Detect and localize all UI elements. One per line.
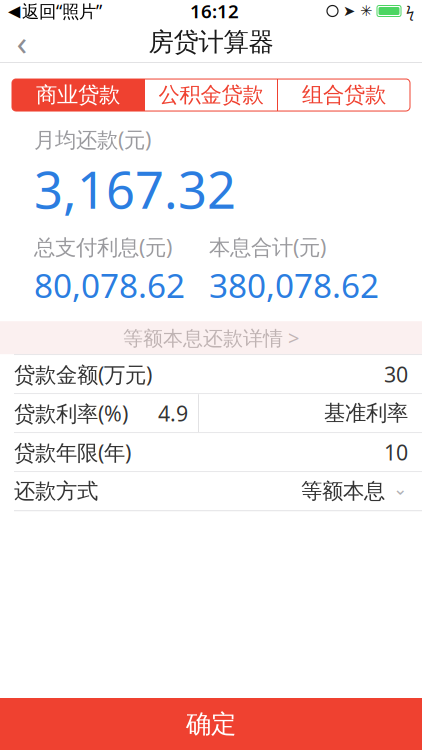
- button[interactable]: 返回: [0, 22, 44, 62]
- staticText: 月均还款(元): [34, 125, 151, 153]
- staticText: ⌄: [393, 479, 408, 499]
- staticText: 商业贷款: [36, 82, 120, 108]
- staticText: 组合贷款: [302, 82, 386, 108]
- button[interactable]: 确定: [0, 698, 422, 750]
- button[interactable]: 商业贷款: [12, 79, 144, 111]
- button[interactable]: 组合贷款: [278, 79, 410, 111]
- staticText: 还款方式: [14, 478, 98, 504]
- staticText: 贷款利率(%): [14, 399, 128, 427]
- staticText: 贷款年限(年): [14, 438, 131, 466]
- staticText: 10: [384, 438, 408, 466]
- button[interactable]: 贷款年限(年): [0, 433, 422, 471]
- staticText: ✳: [360, 3, 372, 19]
- staticText: ϟ: [406, 1, 414, 21]
- staticText: 等额本息: [301, 478, 385, 504]
- button[interactable]: 公积金贷款: [145, 79, 277, 111]
- staticText: 等额本息还款详情 >: [123, 324, 299, 351]
- staticText: 基准利率: [324, 400, 408, 426]
- staticText: 3,167.32: [34, 155, 236, 223]
- staticText: ◀: [8, 2, 20, 20]
- staticText: ‹: [16, 19, 27, 65]
- staticText: 本息合计(元): [209, 233, 326, 261]
- staticText: 30: [384, 360, 408, 388]
- staticText: 公积金贷款: [158, 82, 263, 108]
- staticText: 房贷计算器: [148, 26, 273, 57]
- button[interactable]: 还款方式: [0, 472, 422, 510]
- staticText: ➤: [343, 3, 355, 19]
- staticText: 4.9: [158, 399, 188, 427]
- button[interactable]: 等额本息还款详情 >: [0, 321, 422, 354]
- staticText: 贷款金额(万元): [14, 360, 152, 388]
- staticText: 确定: [186, 708, 236, 739]
- staticText: 380,078.62: [209, 263, 379, 307]
- staticText: 返回“照片”: [22, 0, 102, 22]
- button[interactable]: 贷款利率(%): [0, 394, 422, 432]
- staticText: 80,078.62: [34, 263, 185, 307]
- button[interactable]: 贷款金额(万元): [0, 355, 422, 393]
- staticText: 总支付利息(元): [34, 233, 172, 261]
- staticText: 16:12: [190, 0, 239, 23]
